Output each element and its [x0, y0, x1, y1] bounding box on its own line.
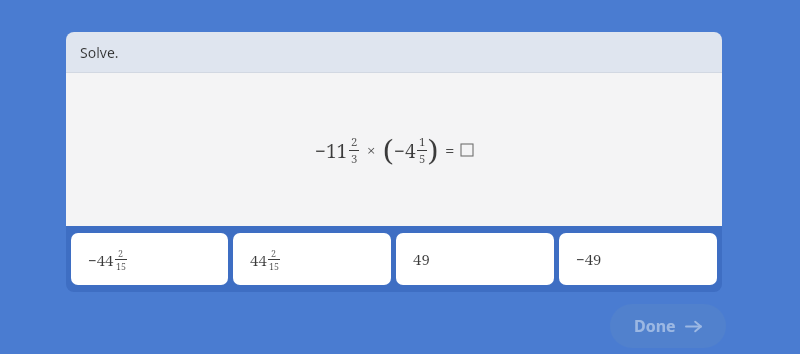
staticText: 3 [351, 151, 358, 167]
staticText: 2 [271, 247, 277, 259]
staticText: 15 [116, 260, 127, 272]
button[interactable]: −49 [559, 233, 717, 285]
other: Done [685, 318, 702, 335]
staticText: −4 [394, 138, 416, 164]
staticText: −11 [315, 138, 348, 164]
staticText: −44 [88, 250, 114, 270]
staticText: 2 [351, 134, 358, 150]
staticText: × [367, 140, 376, 160]
staticText: 2 [118, 247, 124, 259]
staticText: Done [634, 315, 676, 337]
staticText: 15 [269, 260, 280, 272]
staticText: 5 [419, 151, 426, 167]
staticText: 44 [250, 250, 267, 270]
button[interactable]: 44 [233, 233, 391, 285]
staticText: ) [428, 130, 439, 170]
staticText: = [445, 139, 455, 162]
staticText: −49 [576, 249, 602, 269]
button[interactable]: 49 [396, 233, 554, 285]
staticText: ( [383, 130, 394, 170]
button[interactable]: −44 [71, 233, 228, 285]
staticText: Solve. [80, 43, 119, 62]
staticText: 1 [419, 134, 426, 150]
button[interactable]: Done [610, 304, 726, 348]
staticText: 49 [413, 249, 430, 269]
